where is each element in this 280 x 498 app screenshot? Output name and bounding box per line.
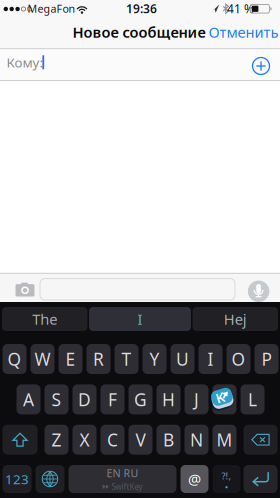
staticText: O [231, 347, 245, 370]
staticText: K [219, 388, 230, 411]
staticText: Z [51, 428, 61, 451]
button[interactable]: Period [212, 465, 240, 493]
staticText: S [51, 388, 61, 411]
button[interactable]: N [184, 425, 208, 455]
button[interactable]: U [170, 344, 194, 374]
staticText: EN RU [106, 466, 138, 480]
staticText: @ [188, 469, 201, 489]
staticText: D [78, 388, 91, 411]
staticText: Hej [224, 309, 247, 329]
staticText: R [93, 347, 104, 370]
button[interactable]: Z [44, 425, 68, 455]
staticText: Кому: [6, 53, 43, 71]
staticText: I [137, 309, 142, 329]
button[interactable]: 123 [2, 465, 31, 493]
button[interactable]: The [2, 307, 87, 331]
button[interactable]: E [58, 344, 82, 374]
button[interactable]: Delete [243, 425, 277, 455]
button[interactable]: Hej [192, 307, 278, 331]
staticText: P [261, 347, 271, 370]
button[interactable]: D [72, 384, 96, 414]
staticText: T [121, 347, 131, 370]
button[interactable]: To [0, 50, 236, 80]
staticText: MegaFon [27, 2, 75, 16]
staticText: L [248, 388, 257, 411]
button[interactable]: Y [142, 344, 166, 374]
button[interactable]: F [100, 384, 124, 414]
button[interactable]: Q [2, 344, 26, 374]
staticText: A [23, 388, 34, 411]
staticText: B [163, 428, 174, 451]
button[interactable]: Shift [2, 425, 37, 455]
button[interactable]: Space [68, 465, 176, 493]
button[interactable]: O [226, 344, 250, 374]
staticText: Q [7, 347, 21, 370]
staticText: K [216, 388, 225, 406]
staticText: M [216, 428, 232, 451]
button[interactable]: I [89, 307, 191, 331]
button[interactable]: X [72, 425, 96, 455]
button[interactable]: L [240, 384, 264, 414]
button[interactable]: @ [180, 465, 208, 493]
button[interactable]: S [44, 384, 68, 414]
staticText: H [162, 388, 175, 411]
staticText: ?!, [221, 470, 231, 482]
staticText: I [207, 347, 213, 370]
staticText: U [176, 347, 189, 370]
button[interactable]: R [86, 344, 110, 374]
button[interactable]: B [156, 425, 180, 455]
button[interactable]: M [212, 425, 236, 455]
staticText: V [135, 428, 145, 451]
staticText: The [32, 309, 57, 329]
staticText: X [79, 428, 89, 451]
staticText: C [107, 428, 118, 451]
staticText: W [34, 347, 50, 370]
button[interactable]: K [212, 384, 236, 414]
button[interactable]: J [184, 384, 208, 414]
button[interactable]: W [30, 344, 54, 374]
staticText: G [134, 388, 147, 411]
staticText: F [108, 388, 117, 411]
staticText: Y [149, 347, 159, 370]
button[interactable]: C [100, 425, 124, 455]
button[interactable]: Camera [14, 281, 36, 297]
button[interactable]: Add Contact [249, 54, 273, 78]
button[interactable]: P [254, 344, 278, 374]
button[interactable]: V [128, 425, 152, 455]
staticText: J [194, 388, 199, 411]
button[interactable]: Voice Message [248, 281, 269, 302]
staticText: E [65, 347, 75, 370]
button[interactable]: I [198, 344, 222, 374]
staticText: Отменить [208, 22, 278, 42]
button[interactable]: Return [243, 465, 277, 493]
staticText: 41 % [227, 1, 254, 17]
staticText: Новое сообщение [72, 22, 205, 42]
button[interactable]: Next Keyboard [35, 465, 64, 493]
button[interactable]: T [114, 344, 138, 374]
button[interactable]: H [156, 384, 180, 414]
button[interactable]: Message [40, 279, 235, 300]
staticText: 19:36 [126, 1, 157, 17]
staticText: 123 [5, 470, 29, 488]
button[interactable]: A [16, 384, 40, 414]
staticText: SwiftKey [111, 481, 142, 492]
button[interactable]: Отменить [208, 19, 278, 45]
staticText: N [190, 428, 203, 451]
button[interactable]: G [128, 384, 152, 414]
